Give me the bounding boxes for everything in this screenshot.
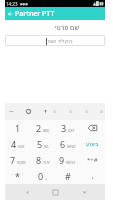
- button[interactable]: Expand: [7, 107, 16, 116]
- staticText: *+#: [87, 156, 98, 164]
- button[interactable]: 1: [5, 120, 30, 136]
- button[interactable]: Back: [20, 185, 34, 199]
- button[interactable]: הקלד שם: [5, 35, 105, 46]
- staticText: JKL: [44, 144, 49, 149]
- staticText: 7: [10, 154, 16, 166]
- staticText: 2: [36, 122, 42, 134]
- button[interactable]: tool0: [50, 107, 59, 116]
- staticText: 3: [61, 122, 67, 134]
- button[interactable]: 8: [30, 152, 55, 168]
- button[interactable]: tool1: [66, 107, 75, 116]
- button[interactable]: 3: [55, 120, 80, 136]
- staticText: +: [45, 176, 48, 181]
- staticText: 8: [36, 154, 42, 166]
- staticText: TUV: [43, 160, 50, 165]
- staticText: ,: [92, 171, 94, 181]
- button[interactable]: Recents: [77, 185, 91, 199]
- staticText: *: [15, 170, 20, 182]
- staticText: 9: [59, 154, 65, 166]
- button[interactable]: Settings: [24, 107, 33, 116]
- button[interactable]: 2: [30, 120, 55, 136]
- staticText: 1: [15, 122, 21, 134]
- button[interactable]: *: [5, 168, 30, 184]
- button[interactable]: Back: [5, 7, 15, 20]
- staticText: MNO: [67, 144, 76, 149]
- button[interactable]: 4: [5, 136, 30, 152]
- button[interactable]: Voice input: [41, 107, 50, 116]
- button[interactable]: 5: [30, 136, 55, 152]
- staticText: 6: [60, 138, 66, 150]
- button[interactable]: key3: [80, 168, 105, 184]
- button[interactable]: 7: [5, 152, 30, 168]
- button[interactable]: #: [55, 168, 80, 184]
- staticText: 5: [37, 138, 43, 150]
- staticText: GHI: [18, 144, 25, 149]
- button[interactable]: key0: [80, 120, 105, 136]
- staticText: 14:23: [6, 1, 18, 7]
- staticText: 4: [11, 138, 17, 150]
- button[interactable]: key2: [80, 152, 105, 168]
- staticText: ABC: [43, 128, 50, 133]
- staticText: הקלד שם: [48, 37, 73, 45]
- staticText: Partner PTT: [15, 9, 55, 19]
- staticText: PQRS: [17, 160, 26, 165]
- button[interactable]: 0: [30, 168, 55, 184]
- staticText: WXYZ: [66, 160, 76, 165]
- staticText: ●●●: [20, 2, 28, 5]
- staticText: #: [65, 170, 71, 182]
- button[interactable]: Home: [48, 185, 62, 199]
- staticText: שם פרטי: [5, 23, 79, 32]
- button[interactable]: tool3: [98, 107, 105, 116]
- staticText: DEF: [68, 128, 75, 133]
- button[interactable]: tool2: [82, 107, 91, 116]
- button[interactable]: 9: [55, 152, 80, 168]
- button[interactable]: key1: [80, 136, 105, 152]
- button[interactable]: 6: [55, 136, 80, 152]
- staticText: 0: [38, 170, 44, 182]
- staticText: ביצוע: [86, 141, 99, 147]
- staticText: ▲▉▮▮: [93, 1, 104, 6]
